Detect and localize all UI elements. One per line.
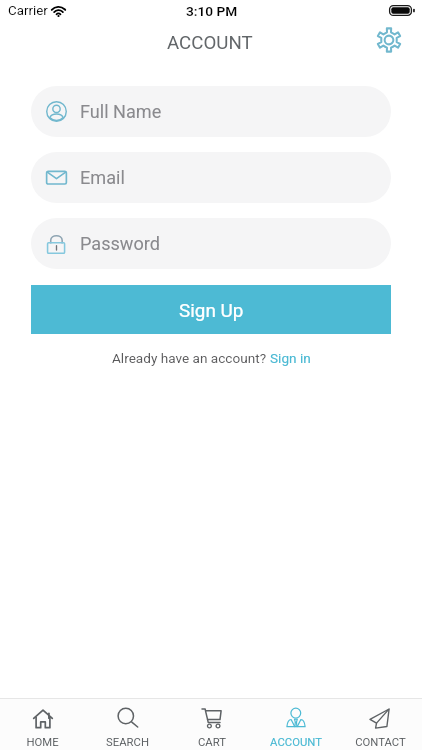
button[interactable]: CART bbox=[170, 699, 254, 750]
button[interactable]: Sign Up bbox=[31, 285, 391, 334]
button[interactable]: Settings bbox=[373, 23, 405, 55]
staticText: CONTACT bbox=[355, 736, 406, 749]
staticText: CART bbox=[198, 736, 226, 749]
button[interactable]: CONTACT bbox=[338, 699, 422, 750]
staticText: Full Name bbox=[80, 101, 162, 122]
button[interactable]: SEARCH bbox=[85, 699, 170, 750]
staticText: Carrier bbox=[8, 3, 48, 19]
button[interactable]: ACCOUNT bbox=[254, 699, 338, 750]
staticText: 3:10 PM bbox=[186, 3, 238, 19]
staticText: SEARCH bbox=[106, 736, 149, 749]
button[interactable]: Password bbox=[31, 218, 391, 269]
button[interactable]: Email bbox=[31, 152, 391, 203]
staticText: Email bbox=[80, 167, 125, 188]
button[interactable]: HOME bbox=[0, 699, 85, 750]
staticText: ACCOUNT bbox=[270, 736, 322, 749]
staticText: HOME bbox=[26, 736, 59, 749]
staticText: Already have an account? bbox=[112, 350, 270, 366]
button[interactable]: Full Name bbox=[31, 86, 391, 137]
staticText: Sign Up bbox=[179, 299, 244, 321]
staticText: ACCOUNT bbox=[167, 32, 253, 54]
button[interactable]: Sign in bbox=[270, 350, 311, 366]
staticText: Password bbox=[80, 233, 160, 254]
